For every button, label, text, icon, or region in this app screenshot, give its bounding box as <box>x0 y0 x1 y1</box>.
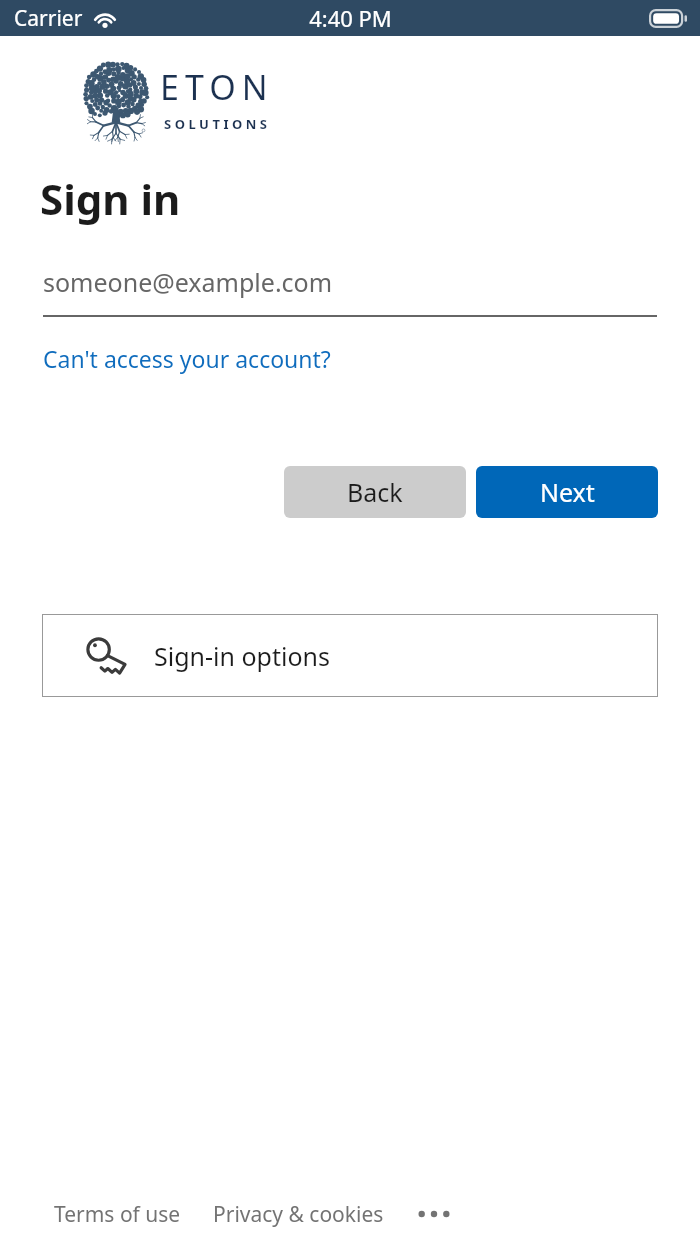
button[interactable]: Can't access your account? <box>43 343 331 374</box>
button[interactable]: Sign-in options <box>42 614 658 697</box>
staticText: Privacy & cookies <box>213 1200 384 1229</box>
staticText: Sign in <box>40 170 181 227</box>
button[interactable]: someone@example.com <box>43 265 657 317</box>
staticText: Terms of use <box>54 1200 181 1229</box>
staticText: SOLUTIONS <box>164 115 271 133</box>
button[interactable]: More options <box>410 1198 458 1230</box>
button[interactable]: Terms of use <box>54 1200 181 1229</box>
button[interactable]: Next <box>476 466 658 518</box>
staticText: 4:40 PM <box>309 3 392 33</box>
staticText: someone@example.com <box>43 265 333 299</box>
button[interactable]: Privacy & cookies <box>213 1200 384 1229</box>
staticText: Back <box>347 475 403 509</box>
staticText: Can't access your account? <box>43 343 331 374</box>
staticText: Next <box>540 475 595 509</box>
staticText: ETON <box>160 64 274 110</box>
button[interactable]: Back <box>284 466 466 518</box>
staticText: Carrier <box>14 4 83 33</box>
staticText: Sign-in options <box>154 639 330 673</box>
